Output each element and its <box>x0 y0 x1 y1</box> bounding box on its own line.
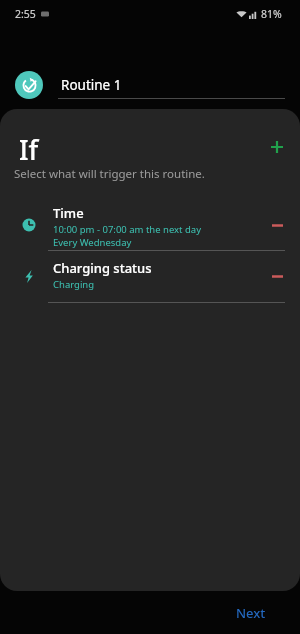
staticText: If <box>19 131 39 168</box>
staticText: 2:55 <box>15 7 36 21</box>
staticText: Charging <box>53 278 95 291</box>
button[interactable]: Charging status <box>0 251 300 303</box>
button[interactable]: Remove <box>259 207 295 243</box>
button[interactable]: Add trigger <box>257 127 297 167</box>
staticText: Every Wednesday <box>53 236 132 249</box>
button[interactable]: Time <box>0 205 300 251</box>
button[interactable]: Routine 1 <box>0 63 300 107</box>
button[interactable]: Remove <box>259 258 295 294</box>
staticText: Select what will trigger this routine. <box>14 166 205 182</box>
staticText: Charging status <box>53 259 152 277</box>
staticText: Routine 1 <box>61 76 122 94</box>
staticText: 81% <box>261 7 282 21</box>
button[interactable]: Next <box>226 598 276 628</box>
staticText: Time <box>53 204 84 222</box>
staticText: 10:00 pm - 07:00 am the next day <box>53 223 202 236</box>
staticText: Next <box>236 604 266 622</box>
